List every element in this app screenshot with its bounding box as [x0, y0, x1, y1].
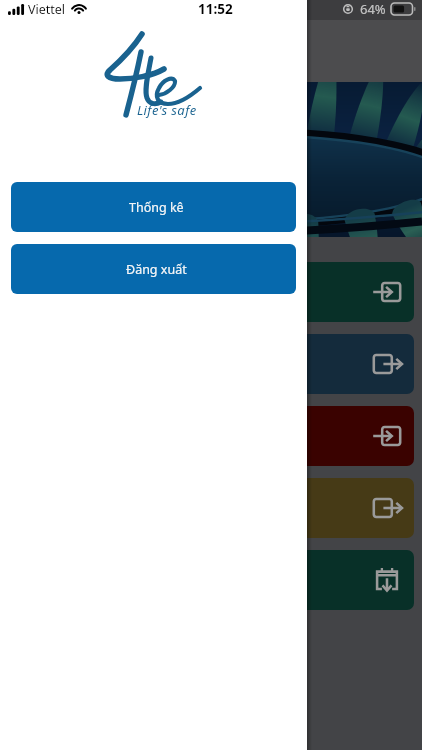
button[interactable]: Schedule [8, 550, 414, 610]
staticText: 64% [360, 0, 386, 18]
staticText: Viettel [28, 1, 66, 18]
staticText: Life's safe [137, 101, 197, 119]
staticText: Thống kê [129, 199, 184, 216]
staticText: Đăng xuất [126, 261, 187, 278]
staticText: 11:52 [198, 0, 233, 18]
button[interactable]: Đăng xuất [11, 244, 296, 294]
button[interactable]: Check out [8, 334, 414, 394]
button[interactable]: Thống kê [11, 182, 296, 232]
button[interactable]: Check in [8, 262, 414, 322]
button[interactable]: Check in [8, 406, 414, 466]
button[interactable]: Check out [8, 478, 414, 538]
